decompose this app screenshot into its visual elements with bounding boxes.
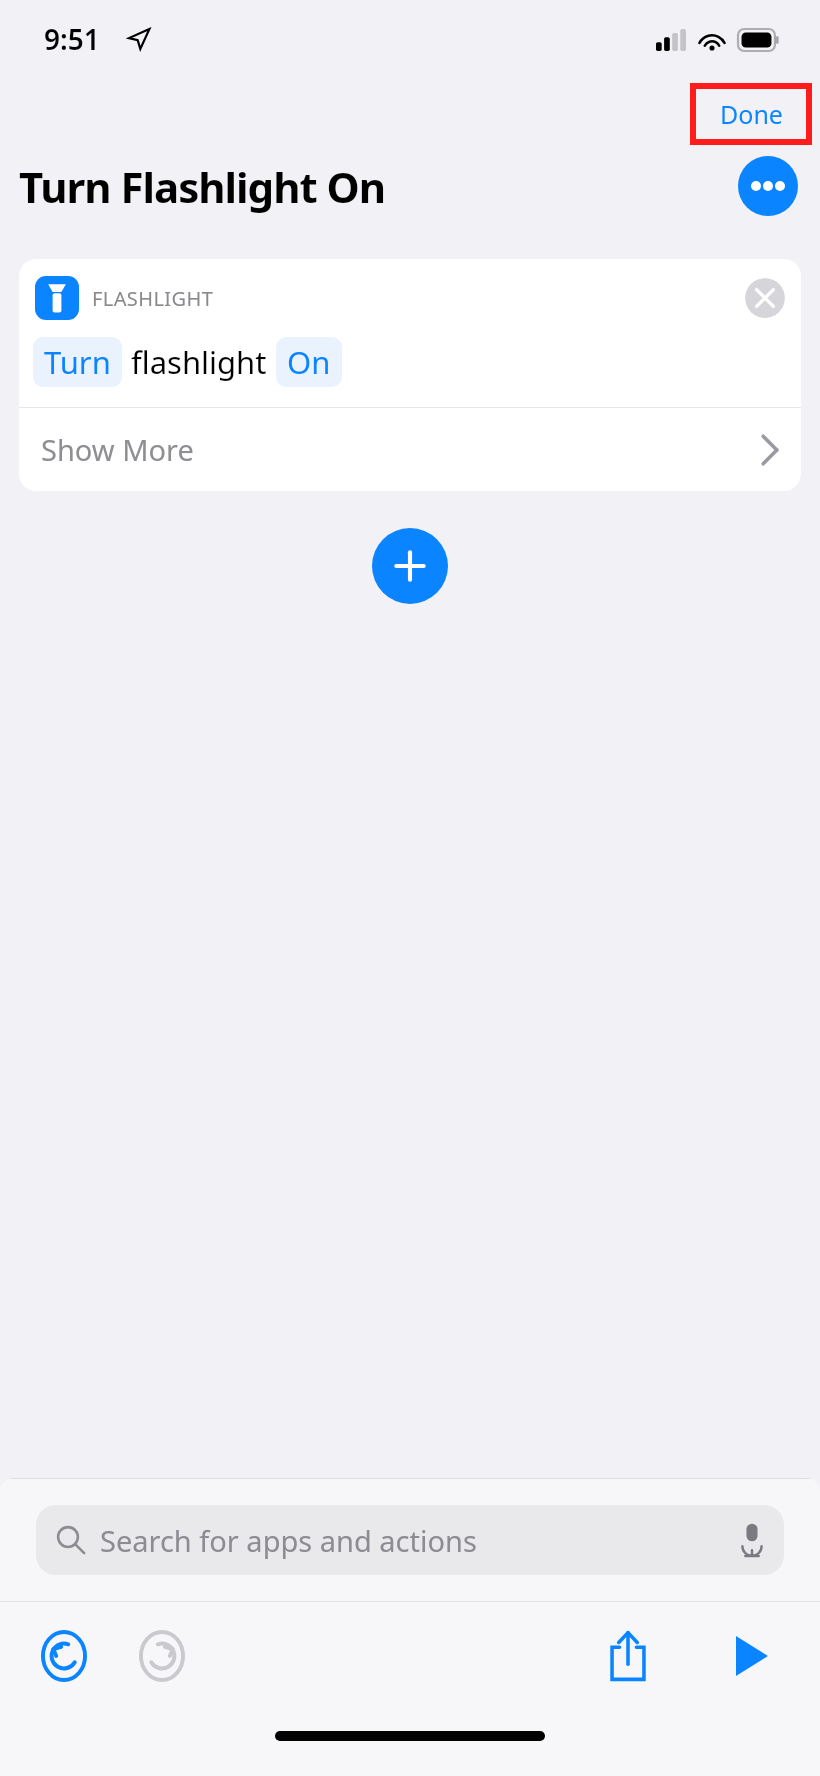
staticText: FLASHLIGHT: [92, 285, 214, 312]
staticText: flashlight: [131, 341, 267, 383]
staticText: Show More: [41, 430, 194, 469]
button[interactable]: More options: [738, 156, 798, 216]
button[interactable]: Redo: [124, 1618, 200, 1694]
button[interactable]: Done: [690, 83, 812, 145]
button[interactable]: Run shortcut: [714, 1618, 790, 1694]
staticText: On: [287, 341, 331, 383]
button[interactable]: Remove action: [745, 278, 785, 318]
staticText: Turn: [44, 341, 111, 383]
button[interactable]: Undo: [26, 1618, 102, 1694]
button[interactable]: Turn: [33, 337, 122, 387]
button[interactable]: Search for apps and actions: [36, 1505, 784, 1575]
staticText: Done: [720, 97, 783, 131]
button[interactable]: Share: [590, 1618, 666, 1694]
staticText: 9:51: [44, 20, 100, 58]
button[interactable]: Add action: [372, 528, 448, 604]
button[interactable]: Show More: [19, 408, 801, 491]
staticText: Search for apps and actions: [100, 1521, 477, 1560]
button[interactable]: On: [276, 337, 342, 387]
staticText: Turn Flashlight On: [19, 158, 386, 215]
